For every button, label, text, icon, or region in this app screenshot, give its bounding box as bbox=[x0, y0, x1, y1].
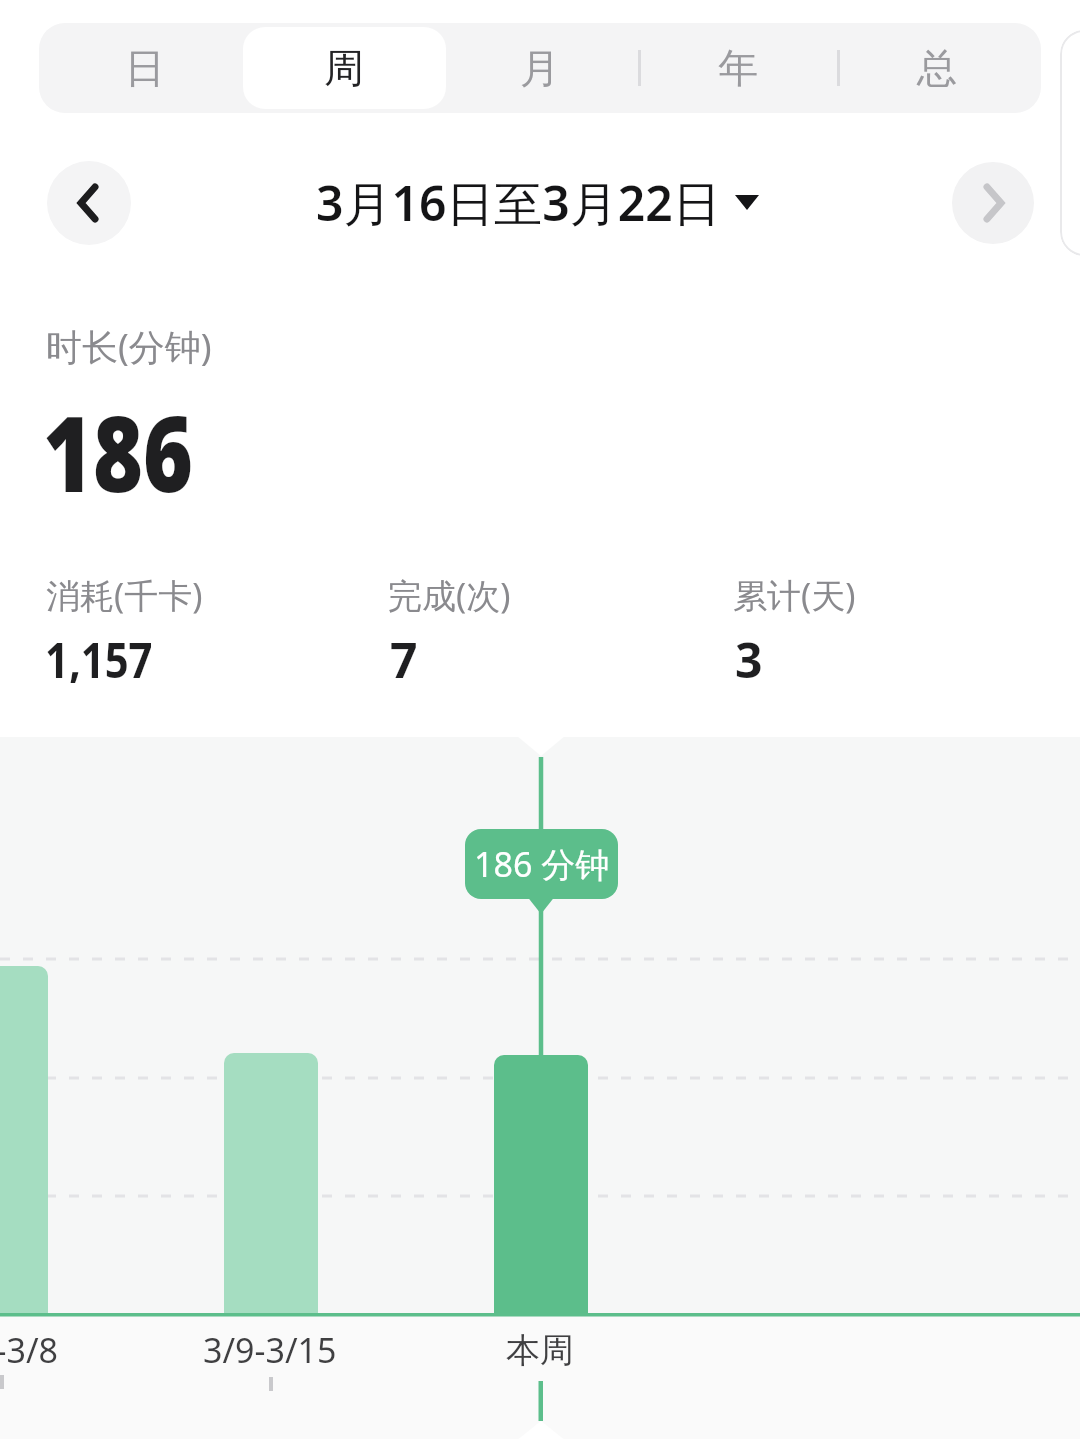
staticText: 总 bbox=[917, 43, 957, 93]
staticText: 时长(分钟) bbox=[46, 322, 212, 370]
staticText: 日 bbox=[125, 43, 165, 93]
staticText: 3/2-3/8 bbox=[0, 1327, 59, 1373]
staticText: 完成(次) bbox=[388, 572, 511, 618]
button[interactable]: 本周 bbox=[440, 1325, 640, 1375]
staticText: 周 bbox=[324, 43, 364, 93]
button[interactable]: 3/9-3/15 bbox=[140, 1325, 400, 1375]
staticText: 186 bbox=[43, 381, 193, 501]
staticText: 消耗(千卡) bbox=[46, 572, 203, 618]
staticText: 3 bbox=[735, 627, 763, 683]
button[interactable]: 年 bbox=[643, 23, 833, 113]
staticText: 7 bbox=[390, 627, 418, 683]
button[interactable]: 3月16日至3月22日 bbox=[302, 161, 772, 245]
button[interactable]: 月 bbox=[445, 23, 635, 113]
button[interactable]: 周 bbox=[244, 23, 444, 113]
staticText: 1,157 bbox=[45, 627, 153, 683]
staticText: 累计(天) bbox=[733, 572, 856, 618]
staticText: 年 bbox=[718, 43, 758, 93]
button[interactable]: 186 分钟 bbox=[465, 829, 618, 899]
staticText: 月 bbox=[520, 43, 560, 93]
button[interactable]: 日 bbox=[50, 23, 240, 113]
staticText: 186 分钟 bbox=[474, 841, 610, 887]
staticText: 3月16日至3月22日 bbox=[316, 170, 721, 236]
staticText: 本周 bbox=[506, 1329, 574, 1372]
button[interactable]: 总 bbox=[842, 23, 1032, 113]
button[interactable] bbox=[952, 162, 1034, 244]
button[interactable] bbox=[47, 161, 131, 245]
staticText: 3/9-3/15 bbox=[203, 1327, 337, 1373]
